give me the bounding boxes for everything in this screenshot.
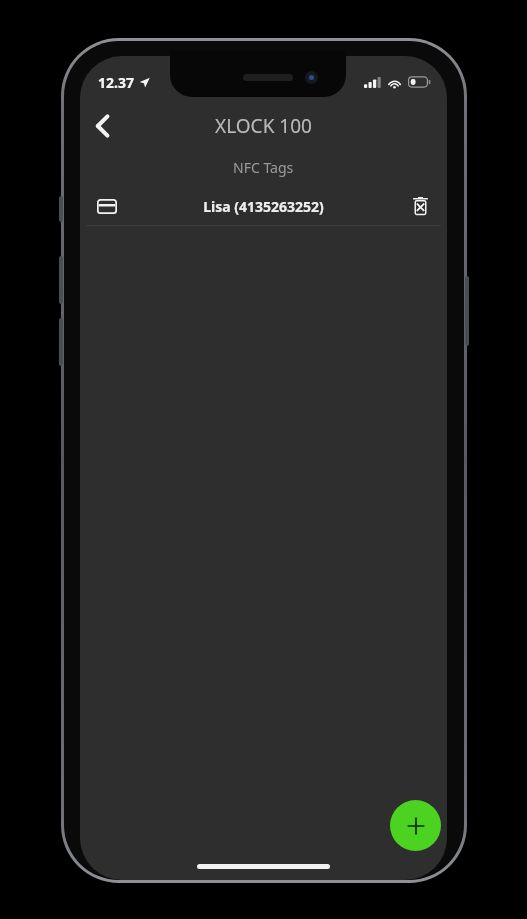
button[interactable]: Back	[80, 104, 124, 148]
button[interactable]: Delete	[407, 193, 433, 219]
staticText: XLOCK 100	[215, 113, 312, 139]
staticText: Lisa (4135263252)	[203, 197, 324, 216]
staticText: NFC Tags	[233, 158, 294, 177]
button[interactable]: Add NFC tag	[390, 800, 441, 851]
staticText: 12.37	[98, 73, 134, 92]
button[interactable]: Lisa (4135263252)	[80, 187, 447, 225]
